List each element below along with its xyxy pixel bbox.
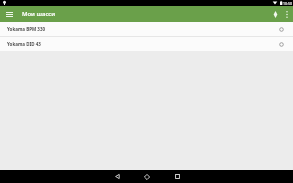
button[interactable]: Yokama DID 43 <box>0 37 293 51</box>
button[interactable] <box>105 170 129 183</box>
staticText: Yokama BPM 330 <box>7 26 46 32</box>
button[interactable] <box>3 6 16 22</box>
staticText: Yokama DID 43 <box>7 41 41 47</box>
button[interactable] <box>270 6 281 22</box>
button[interactable] <box>135 170 159 183</box>
button[interactable]: Yokama BPM 330 <box>0 22 293 36</box>
button[interactable] <box>281 6 292 22</box>
staticText: 10:50 <box>283 1 292 6</box>
staticText: Мои шасси <box>22 10 56 18</box>
button[interactable] <box>165 170 189 183</box>
